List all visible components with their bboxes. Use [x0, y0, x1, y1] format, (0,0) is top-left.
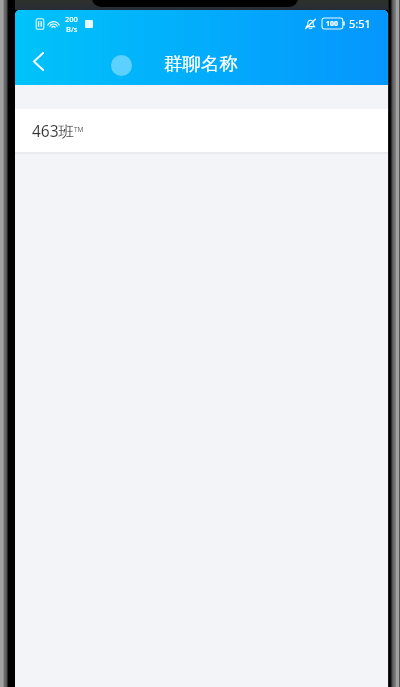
staticText: TM — [74, 125, 84, 134]
button[interactable]: Back — [15, 37, 61, 85]
staticText: 200 — [65, 14, 78, 24]
button[interactable]: 463班 — [15, 109, 388, 152]
staticText: 5:51 — [349, 16, 371, 31]
staticText: B/s — [66, 24, 78, 34]
staticText: 463班 — [32, 120, 75, 141]
staticText: 100 — [326, 19, 339, 29]
staticText: 群聊名称 — [164, 52, 238, 75]
